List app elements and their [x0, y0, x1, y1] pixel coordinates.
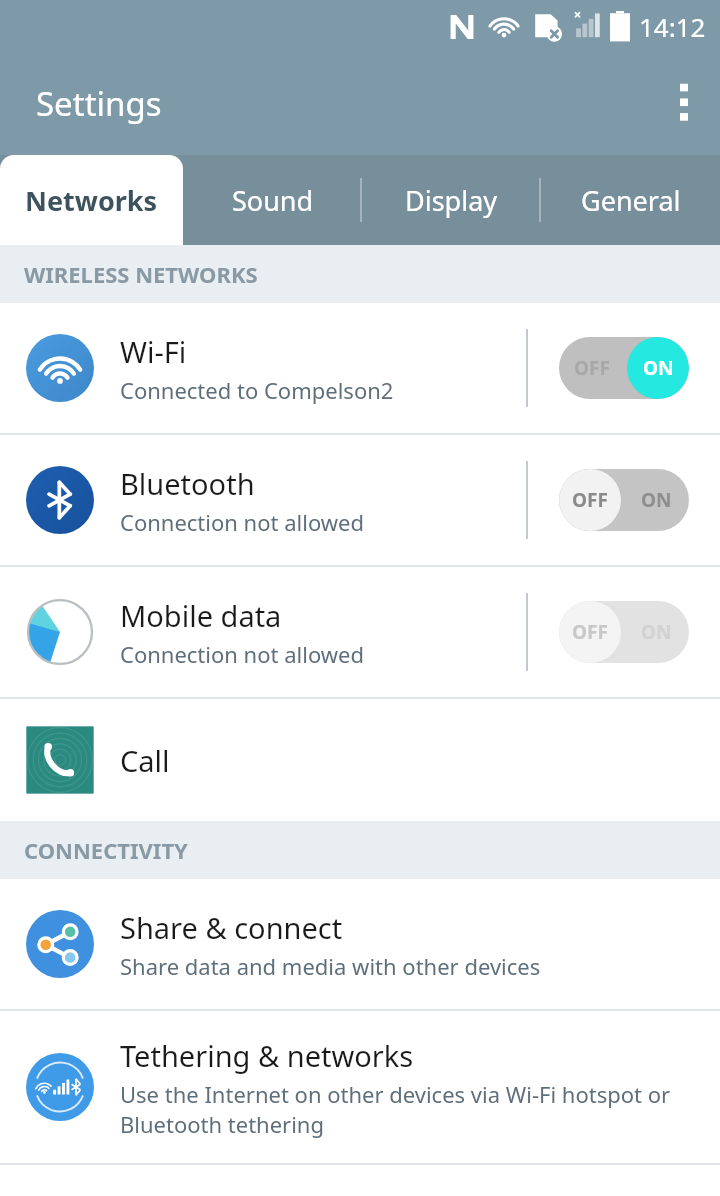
staticText: OFF — [574, 487, 610, 513]
staticText: Connection not allowed — [120, 507, 364, 537]
staticText: Connection not allowed — [120, 639, 364, 669]
staticText: 14:12 — [639, 9, 706, 44]
staticText: Connected to Compelson2 — [120, 375, 394, 405]
staticText: ON — [641, 355, 672, 381]
button[interactable]: Call — [0, 699, 720, 821]
button[interactable]: Mobile data — [0, 567, 720, 697]
staticText: WIRELESS NETWORKS — [24, 259, 258, 289]
staticText: Use the Internet on other devices via Wi… — [120, 1079, 708, 1139]
staticText: Share data and media with other devices — [120, 951, 541, 981]
button[interactable]: Sound — [183, 155, 362, 245]
staticText: Sound — [232, 182, 314, 219]
button[interactable]: Wi-Fi switch — [528, 303, 720, 433]
staticText: Settings — [36, 81, 162, 126]
button[interactable]: Mobile data switch — [528, 567, 720, 697]
button[interactable]: More options — [648, 68, 720, 140]
staticText: Display — [405, 182, 498, 219]
button[interactable]: Networks — [0, 155, 183, 245]
staticText: OFF — [574, 619, 610, 645]
staticText: Tethering & networks — [120, 1036, 414, 1075]
button[interactable]: Tethering & networks — [0, 1011, 720, 1163]
staticText: ON — [643, 355, 674, 381]
staticText: Call — [120, 741, 170, 780]
staticText: Mobile data — [120, 596, 282, 635]
staticText: Wi-Fi — [120, 332, 187, 371]
staticText: General — [581, 182, 681, 219]
staticText: Networks — [25, 182, 158, 219]
staticText: OFF — [574, 355, 610, 381]
staticText: Bluetooth — [120, 464, 255, 503]
staticText: ON — [641, 487, 672, 513]
button[interactable]: General — [541, 155, 720, 245]
staticText: Share & connect — [120, 908, 343, 947]
button[interactable]: Share & connect — [0, 879, 720, 1009]
button[interactable]: Wi-Fi — [0, 303, 720, 433]
staticText: OFF — [572, 487, 608, 513]
staticText: ON — [641, 619, 672, 645]
button[interactable]: Bluetooth — [0, 435, 720, 565]
button[interactable]: Bluetooth switch — [528, 435, 720, 565]
staticText: OFF — [572, 619, 608, 645]
button[interactable]: Display — [362, 155, 541, 245]
staticText: CONNECTIVITY — [24, 835, 188, 865]
